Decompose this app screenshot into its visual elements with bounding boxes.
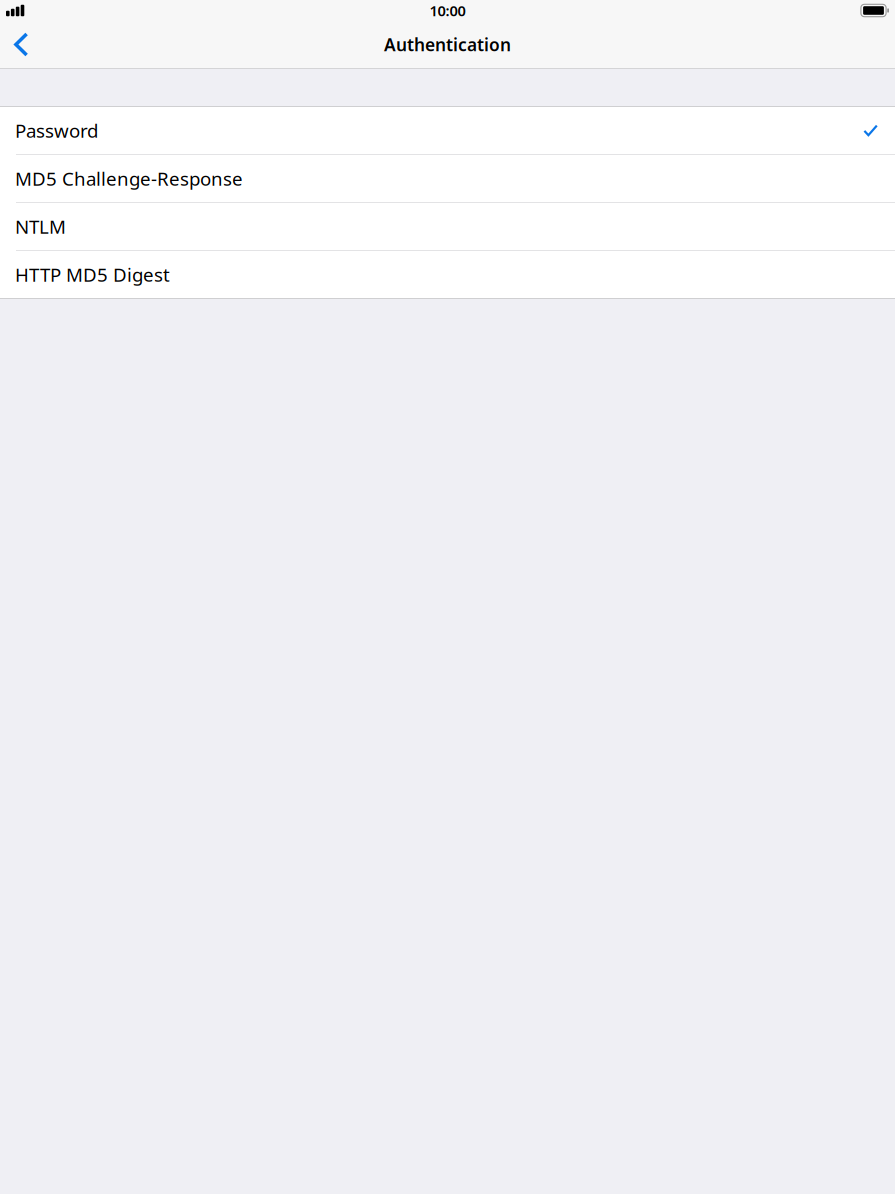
button[interactable]: MD5 Challenge-Response <box>0 155 895 203</box>
staticText: NTLM <box>15 214 66 239</box>
staticText: MD5 Challenge-Response <box>15 166 243 191</box>
button[interactable]: Password <box>0 107 895 155</box>
staticText: 10:00 <box>429 1 465 20</box>
staticText: Authentication <box>384 33 511 56</box>
staticText: HTTP MD5 Digest <box>15 262 170 287</box>
button[interactable]: Back <box>0 21 42 68</box>
staticText: Password <box>15 118 98 143</box>
button[interactable]: HTTP MD5 Digest <box>0 251 895 298</box>
button[interactable]: NTLM <box>0 203 895 251</box>
